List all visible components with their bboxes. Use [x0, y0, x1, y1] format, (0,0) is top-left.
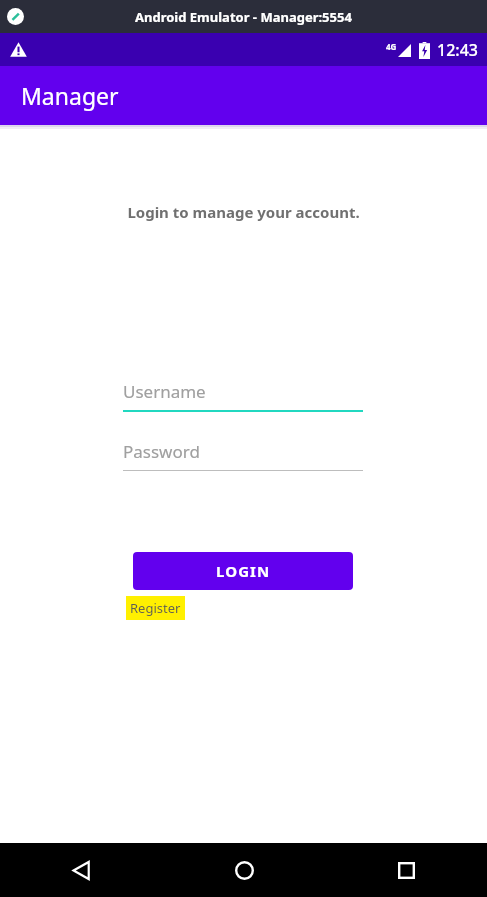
button[interactable]: Back: [0, 843, 163, 897]
button[interactable]: Username: [123, 380, 363, 412]
other: Emulator icon: [7, 8, 24, 25]
button[interactable]: Recent apps: [325, 843, 487, 897]
staticText: Login to manage your account.: [0, 202, 487, 222]
staticText: 4G: [386, 41, 397, 52]
staticText: LOGIN: [216, 561, 271, 581]
staticText: 12:43: [437, 39, 478, 61]
staticText: Username: [123, 380, 206, 403]
staticText: Password: [123, 440, 200, 463]
button[interactable]: Register: [126, 596, 185, 620]
button[interactable]: Home: [163, 843, 325, 897]
staticText: Register: [130, 599, 181, 617]
staticText: Manager: [21, 80, 119, 111]
staticText: Android Emulator - Manager:5554: [135, 8, 352, 26]
button[interactable]: LOGIN: [133, 552, 353, 590]
button[interactable]: Password: [123, 440, 363, 471]
